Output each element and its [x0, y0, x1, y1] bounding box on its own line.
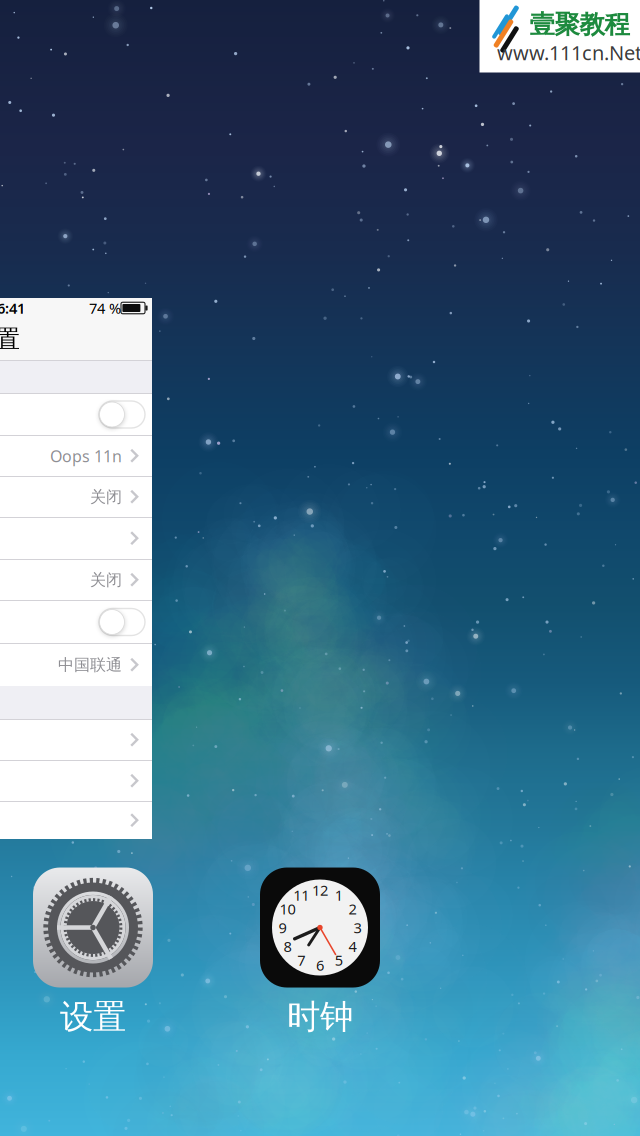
- staticText: 5: [335, 950, 343, 970]
- staticText: 12: [312, 880, 328, 900]
- staticText: 11: [293, 885, 309, 905]
- button[interactable]: [0, 518, 152, 559]
- staticText: 6:41: [0, 298, 25, 318]
- staticText: www.111cn.Net: [497, 39, 640, 66]
- button[interactable]: [0, 761, 152, 801]
- button[interactable]: [0, 720, 152, 760]
- staticText: 10: [279, 899, 295, 918]
- button[interactable]: [0, 394, 152, 435]
- staticText: 中国联通: [58, 655, 122, 675]
- staticText: 6: [316, 955, 324, 975]
- staticText: 1: [335, 885, 343, 905]
- staticText: 时钟: [287, 996, 353, 1037]
- staticText: Oops 11n: [50, 445, 122, 467]
- staticText: 关闭: [90, 487, 122, 507]
- staticText: 74 %: [89, 298, 121, 318]
- button[interactable]: 1: [250, 868, 390, 1037]
- staticText: 设置: [60, 996, 126, 1037]
- staticText: 2: [348, 899, 356, 918]
- button[interactable]: 关闭: [0, 560, 152, 600]
- button[interactable]: 关闭: [0, 477, 152, 517]
- button[interactable]: Oops 11n: [0, 436, 152, 476]
- staticText: 置: [0, 324, 20, 354]
- button[interactable]: 中国联通: [0, 644, 152, 686]
- staticText: 9: [278, 918, 286, 937]
- staticText: 3: [354, 918, 362, 937]
- staticText: 4: [348, 937, 356, 956]
- staticText: 壹聚教程: [529, 9, 629, 40]
- button[interactable]: [0, 802, 152, 839]
- button[interactable]: [0, 601, 152, 643]
- staticText: 7: [297, 950, 305, 970]
- staticText: 8: [283, 937, 291, 956]
- button[interactable]: 设置: [23, 868, 163, 1037]
- staticText: 关闭: [90, 570, 122, 590]
